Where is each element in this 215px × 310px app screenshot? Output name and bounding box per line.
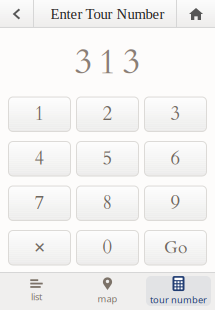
button[interactable]: 5 (76, 141, 138, 176)
staticText: 3 (122, 39, 140, 86)
button[interactable]: Go (144, 230, 206, 265)
staticText: 1 (98, 39, 116, 86)
staticText: Go (164, 236, 187, 259)
button[interactable]: 2 (76, 97, 138, 131)
staticText: 0 (102, 235, 112, 260)
staticText: map (97, 293, 117, 305)
staticText: 9 (170, 191, 180, 216)
staticText: Enter Tour Number (50, 6, 164, 22)
staticText: 1 (34, 102, 44, 127)
button[interactable]: ✕ (8, 230, 70, 265)
staticText: 8 (102, 191, 112, 216)
button[interactable]: 6 (144, 141, 206, 176)
staticText: 3 (74, 39, 92, 86)
staticText: 7 (34, 191, 44, 216)
button[interactable]: 1 (8, 97, 70, 131)
staticText: 6 (170, 146, 180, 171)
staticText: 2 (102, 102, 112, 127)
button[interactable]: 8 (76, 186, 138, 220)
button[interactable]: Home (177, 0, 215, 28)
button[interactable]: 3 (144, 97, 206, 131)
button[interactable]: 9 (144, 186, 206, 220)
staticText: list (31, 291, 42, 303)
staticText: tour number (150, 294, 207, 306)
button[interactable]: list (1, 272, 72, 310)
staticText: 5 (102, 146, 112, 171)
button[interactable]: tour number (143, 272, 214, 310)
button[interactable]: 4 (8, 141, 70, 176)
button[interactable]: map (72, 272, 143, 310)
button[interactable]: Back (0, 0, 33, 28)
button[interactable]: 0 (76, 230, 138, 265)
button[interactable]: 7 (8, 186, 70, 220)
staticText: 4 (34, 146, 44, 171)
staticText: ✕ (33, 239, 45, 256)
staticText: 3 (170, 102, 180, 127)
